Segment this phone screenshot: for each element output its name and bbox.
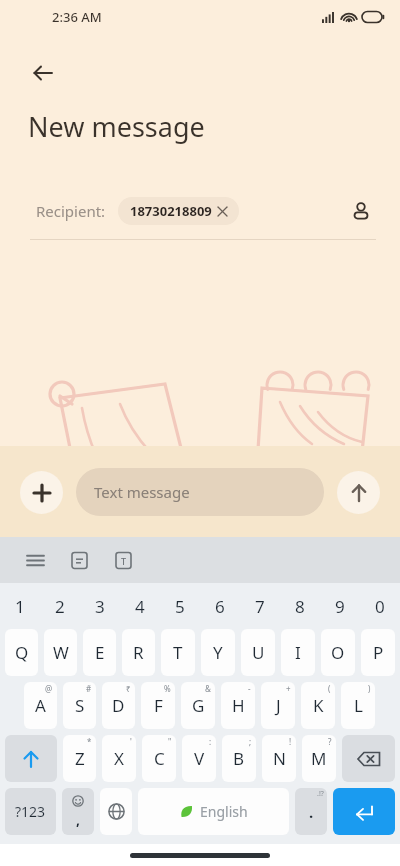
button[interactable]: Y (201, 629, 235, 676)
button[interactable]: Q (5, 629, 38, 676)
staticText: ' (130, 736, 132, 747)
staticText: " (168, 736, 172, 747)
button[interactable]: K (301, 682, 335, 729)
button[interactable]: ?123 (5, 788, 56, 835)
staticText: F (154, 694, 163, 717)
staticText: L (354, 694, 363, 717)
staticText: New message (28, 108, 205, 145)
staticText: W (53, 641, 69, 664)
staticText: 2:36 AM (52, 8, 102, 26)
button[interactable]: Backspace (342, 735, 395, 782)
button[interactable]: P (361, 629, 395, 676)
staticText: Text message (94, 482, 190, 502)
button[interactable]: 9 (320, 586, 360, 626)
button[interactable]: B (222, 735, 256, 782)
button[interactable]: Back (22, 52, 64, 94)
staticText: ! (289, 736, 292, 747)
staticText: Y (213, 641, 223, 664)
button[interactable]: Text style (106, 543, 140, 577)
button[interactable]: English (138, 788, 289, 835)
button[interactable]: Emoji and comma (62, 788, 94, 835)
staticText: P (373, 641, 384, 664)
staticText: B (233, 747, 245, 770)
button[interactable]: Enter (333, 788, 395, 835)
button[interactable]: O (321, 629, 355, 676)
staticText: - (248, 683, 251, 694)
button[interactable]: Z (63, 735, 96, 782)
button[interactable]: Menu (18, 543, 52, 577)
button[interactable]: D (102, 682, 135, 729)
button[interactable]: 0 (360, 586, 400, 626)
staticText: : (209, 736, 212, 747)
staticText: 8 (295, 595, 305, 618)
staticText: @ (45, 683, 53, 694)
staticText: U (252, 641, 265, 664)
staticText: ) (368, 683, 371, 694)
staticText: ( (328, 683, 331, 694)
button[interactable]: 3 (80, 586, 120, 626)
staticText: , (76, 810, 80, 829)
button[interactable]: Clipboard (62, 543, 96, 577)
button[interactable]: Add attachment (20, 471, 63, 514)
staticText: 9 (335, 595, 345, 618)
staticText: J (276, 694, 281, 717)
staticText: 4 (135, 595, 145, 618)
button[interactable]: R (122, 629, 155, 676)
button[interactable]: 1 (0, 586, 40, 626)
staticText: D (112, 694, 125, 717)
staticText: .!? (317, 789, 324, 799)
staticText: R (133, 641, 144, 664)
staticText: ? (328, 736, 332, 747)
button[interactable]: U (241, 629, 275, 676)
button[interactable]: E (83, 629, 116, 676)
button[interactable]: 18730218809 (118, 197, 239, 225)
button[interactable]: M (302, 735, 336, 782)
staticText: T (121, 555, 127, 567)
staticText: 0 (375, 595, 385, 618)
button[interactable]: X (102, 735, 136, 782)
button[interactable]: I (281, 629, 315, 676)
staticText: O (331, 641, 345, 664)
staticText: Q (15, 641, 29, 664)
staticText: V (194, 747, 205, 770)
button[interactable]: A (24, 682, 57, 729)
button[interactable]: S (63, 682, 96, 729)
staticText: S (75, 694, 85, 717)
staticText: C (154, 747, 165, 770)
button[interactable]: L (341, 682, 375, 729)
button[interactable]: T (161, 629, 195, 676)
button[interactable]: 2 (40, 586, 80, 626)
staticText: 18730218809 (130, 202, 212, 220)
button[interactable]: 8 (280, 586, 320, 626)
button[interactable]: Choose contact (342, 192, 380, 230)
staticText: N (273, 747, 286, 770)
button[interactable]: Change language (100, 788, 132, 835)
button[interactable]: Text message (76, 468, 324, 516)
staticText: ₹ (126, 683, 131, 694)
button[interactable]: 5 (160, 586, 200, 626)
button[interactable]: W (44, 629, 77, 676)
button[interactable]: 4 (120, 586, 160, 626)
staticText: # (86, 683, 92, 694)
button[interactable]: G (181, 682, 215, 729)
button[interactable]: . (295, 788, 327, 835)
button[interactable]: 7 (240, 586, 280, 626)
button[interactable]: F (141, 682, 175, 729)
staticText: % (164, 683, 171, 694)
staticText: K (313, 694, 324, 717)
staticText: English (200, 802, 248, 821)
staticText: G (192, 694, 205, 717)
button[interactable]: V (182, 735, 216, 782)
staticText: Z (75, 747, 85, 770)
staticText: ?123 (15, 802, 46, 821)
button[interactable]: J (261, 682, 295, 729)
button[interactable]: 6 (200, 586, 240, 626)
staticText: T (173, 641, 183, 664)
button[interactable]: Shift (5, 735, 57, 782)
staticText: 6 (215, 595, 225, 618)
button[interactable]: H (221, 682, 255, 729)
button[interactable]: C (142, 735, 176, 782)
button[interactable]: N (262, 735, 296, 782)
button[interactable]: Send (337, 471, 380, 514)
staticText: X (114, 747, 124, 770)
